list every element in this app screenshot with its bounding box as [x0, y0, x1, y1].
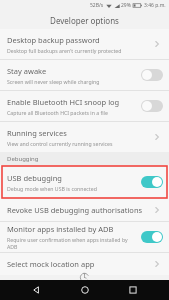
staticText: Developer options: [50, 15, 119, 26]
button[interactable]: Monitor apps installed by ADB: [0, 222, 169, 252]
staticText: 29%: [121, 2, 131, 9]
other: Open: [151, 204, 163, 216]
staticText: Running services: [7, 128, 67, 138]
staticText: Capture all Bluetooth HCI packets in a f…: [7, 109, 108, 116]
staticText: View and control currently running servi…: [7, 140, 113, 147]
button[interactable]: Home: [72, 280, 98, 300]
button[interactable]: Desktop backup password: [0, 29, 169, 59]
button[interactable]: Off: [141, 100, 163, 112]
button[interactable]: Select mock location app: [0, 253, 169, 275]
button[interactable]: Stay awake: [0, 60, 169, 90]
staticText: Require user confirmation when apps inst…: [7, 236, 137, 250]
button[interactable]: Running services: [0, 122, 169, 152]
staticText: Enable Bluetooth HCI snoop log: [7, 97, 120, 107]
staticText: 52B/s: [90, 2, 104, 9]
button[interactable]: On: [141, 231, 163, 243]
staticText: Desktop full backups aren't currently pr…: [7, 47, 122, 54]
button[interactable]: Restore default settings: [0, 275, 169, 280]
staticText: Revoke USB debugging authorisations: [7, 205, 143, 215]
staticText: Stay awake: [7, 66, 47, 76]
button[interactable]: Off: [141, 69, 163, 81]
button[interactable]: Revoke USB debugging authorisations: [0, 199, 169, 221]
staticText: Screen will never sleep while charging: [7, 78, 100, 85]
staticText: Select mock location app: [7, 259, 95, 269]
button[interactable]: Back: [23, 280, 49, 300]
staticText: Debugging: [7, 155, 39, 163]
staticText: Monitor apps installed by ADB: [7, 224, 114, 234]
button[interactable]: On: [141, 176, 163, 188]
button[interactable]: Recent apps: [120, 280, 146, 300]
button[interactable]: USB debugging: [2, 166, 167, 198]
staticText: Debug mode when USB is connected: [7, 185, 97, 192]
other: Open: [151, 258, 163, 270]
other: Open: [151, 131, 163, 143]
other: Open: [151, 38, 163, 50]
staticText: Desktop backup password: [7, 35, 100, 45]
button[interactable]: Enable Bluetooth HCI snoop log: [0, 91, 169, 121]
staticText: USB debugging: [7, 173, 62, 183]
staticText: 3:46 p.m.: [144, 2, 166, 9]
